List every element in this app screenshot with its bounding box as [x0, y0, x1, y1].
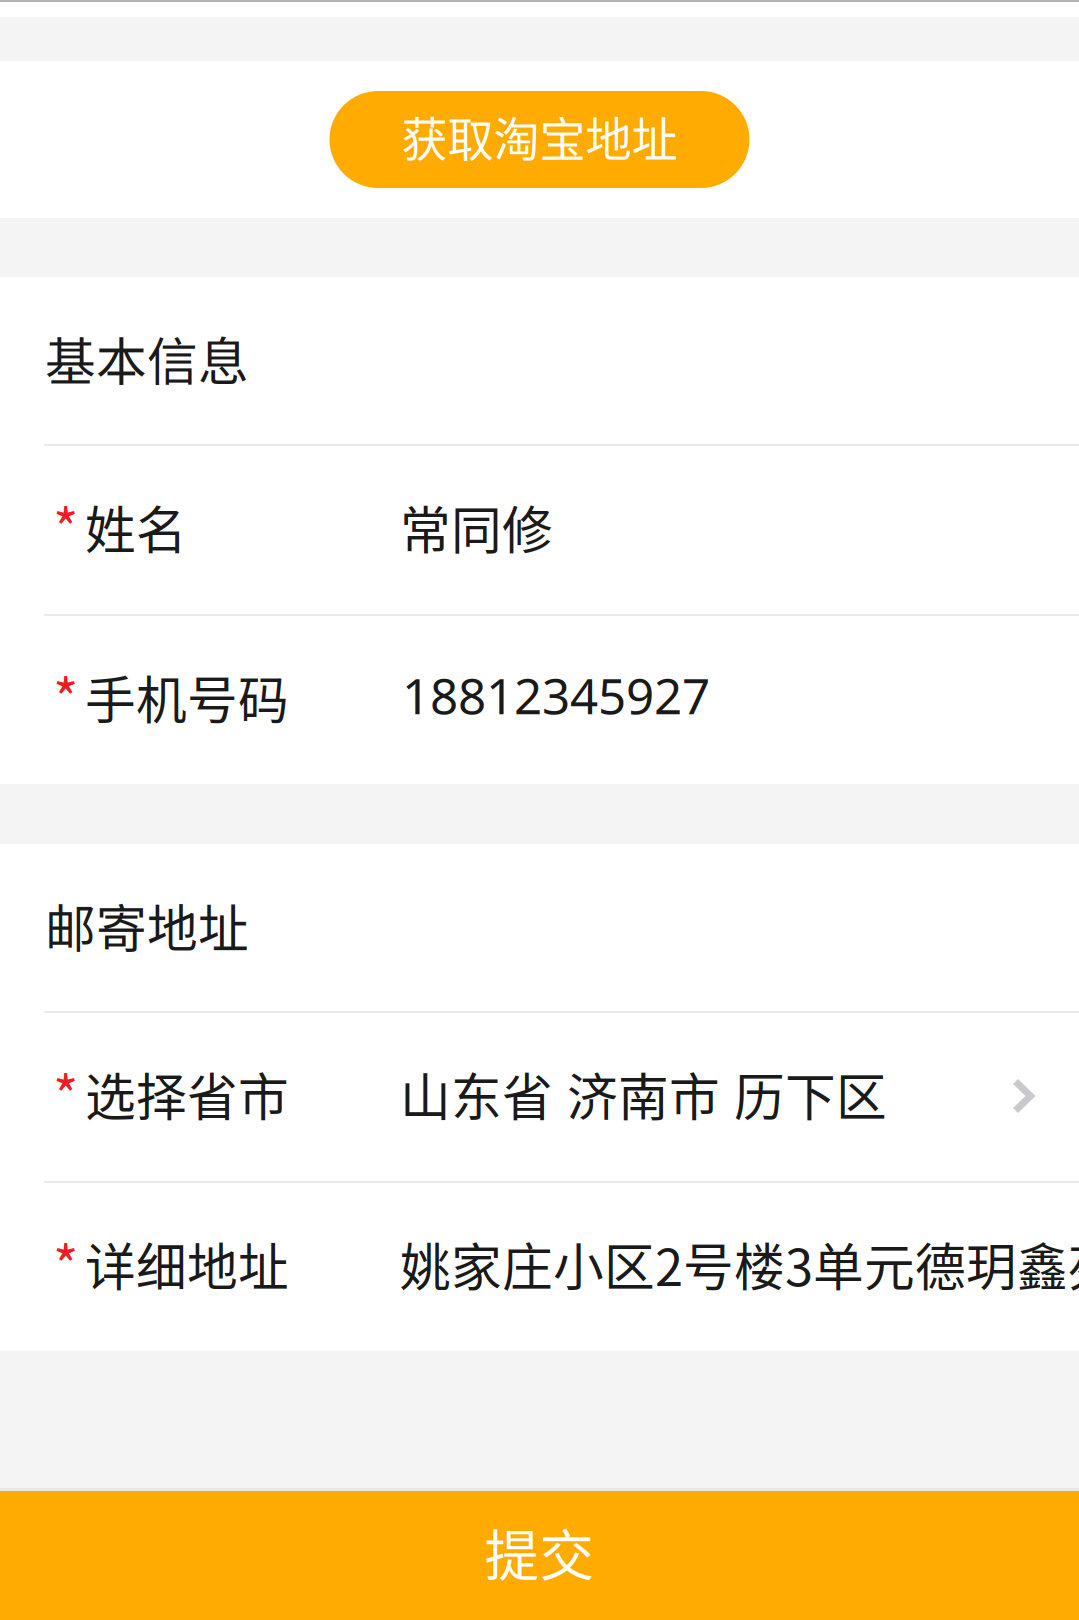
staticText: 常同修 [400, 490, 553, 564]
staticText: * [53, 1223, 79, 1303]
staticText: 姚家庄小区2号楼3单元德玥鑫苑 [400, 1227, 1079, 1301]
staticText: 姓名 [85, 490, 187, 564]
staticText: 选择省市 [85, 1057, 289, 1131]
button[interactable]: * [0, 1011, 1079, 1181]
button[interactable]: 提交 [0, 1491, 1079, 1620]
staticText: 山东省 济南市 历下区 [400, 1057, 887, 1131]
staticText: 提交 [484, 1512, 594, 1591]
staticText: * [53, 1053, 79, 1133]
staticText: 邮寄地址 [45, 889, 249, 962]
staticText: 基本信息 [45, 322, 249, 395]
button[interactable]: 获取淘宝地址 [329, 91, 749, 188]
staticText: 获取淘宝地址 [401, 103, 677, 170]
button[interactable]: * [0, 614, 1079, 784]
staticText: * [53, 486, 79, 566]
staticText: 手机号码 [85, 660, 289, 734]
button[interactable]: * [0, 444, 1079, 614]
staticText: * [53, 656, 79, 736]
button[interactable]: * [0, 1181, 1079, 1351]
staticText: 详细地址 [85, 1227, 289, 1301]
staticText: 18812345927 [402, 661, 710, 729]
